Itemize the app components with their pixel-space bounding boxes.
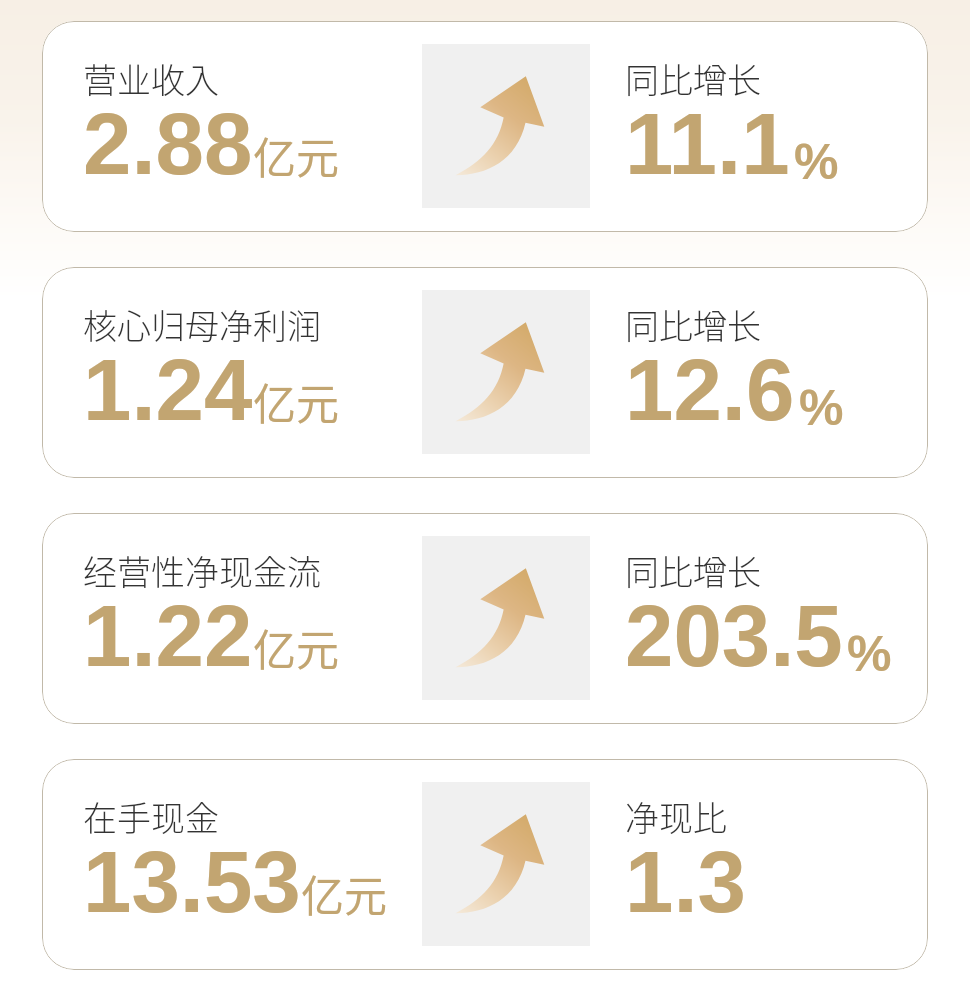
button[interactable]: 核心归母净利润 [42,267,928,478]
staticText: 12.6 [625,341,795,438]
button[interactable]: 在手现金 [42,759,928,970]
staticText: 203.5 [625,587,843,684]
staticText: 在手现金 [83,792,219,841]
staticText: 13.53 [83,833,301,930]
staticText: 营业收入 [83,54,219,103]
staticText: 亿元 [253,370,339,432]
staticText: 同比增长 [625,546,761,595]
staticText: 净现比 [625,792,727,841]
staticText: 亿元 [253,616,339,678]
staticText: 2.88 [83,95,253,192]
staticText: 亿元 [253,124,339,186]
staticText: % [794,134,839,190]
staticText: % [799,380,844,436]
staticText: 1.3 [625,833,746,930]
staticText: 11.1 [625,95,790,192]
button[interactable]: 营业收入 [42,21,928,232]
staticText: 经营性净现金流 [83,546,321,595]
staticText: 亿元 [301,862,387,924]
staticText: 同比增长 [625,300,761,349]
staticText: 1.24 [83,341,253,438]
staticText: 同比增长 [625,54,761,103]
button[interactable]: 经营性净现金流 [42,513,928,724]
staticText: 1.22 [83,587,253,684]
staticText: % [847,626,892,682]
staticText: 核心归母净利润 [83,300,321,349]
